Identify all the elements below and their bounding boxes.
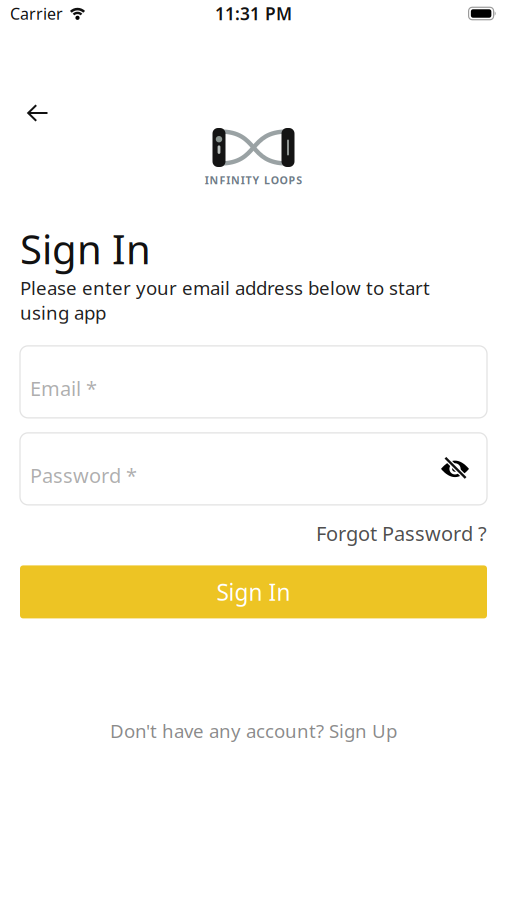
button[interactable]: Sign Up [329,718,397,743]
button[interactable]: Forgot Password ? [316,520,487,546]
staticText: Sign In [20,222,151,275]
staticText: Forgot Password ? [316,520,487,546]
staticText: 11:31 PM [215,2,292,25]
staticText: Email * [30,375,97,402]
staticText: Password * [30,462,137,489]
staticText: Carrier [10,3,63,24]
button[interactable]: Sign In [20,565,487,618]
staticText: INFINITY LOOPS [205,173,302,187]
button[interactable]: Show password [437,455,473,483]
staticText: Sign Up [329,718,397,743]
staticText: Please enter your email address below to… [20,275,430,325]
staticText: Don't have any account? [110,718,324,743]
button[interactable]: Password * [20,433,487,505]
button[interactable]: Back [21,98,54,128]
staticText: Sign In [216,577,290,607]
button[interactable]: Email * [20,346,487,418]
